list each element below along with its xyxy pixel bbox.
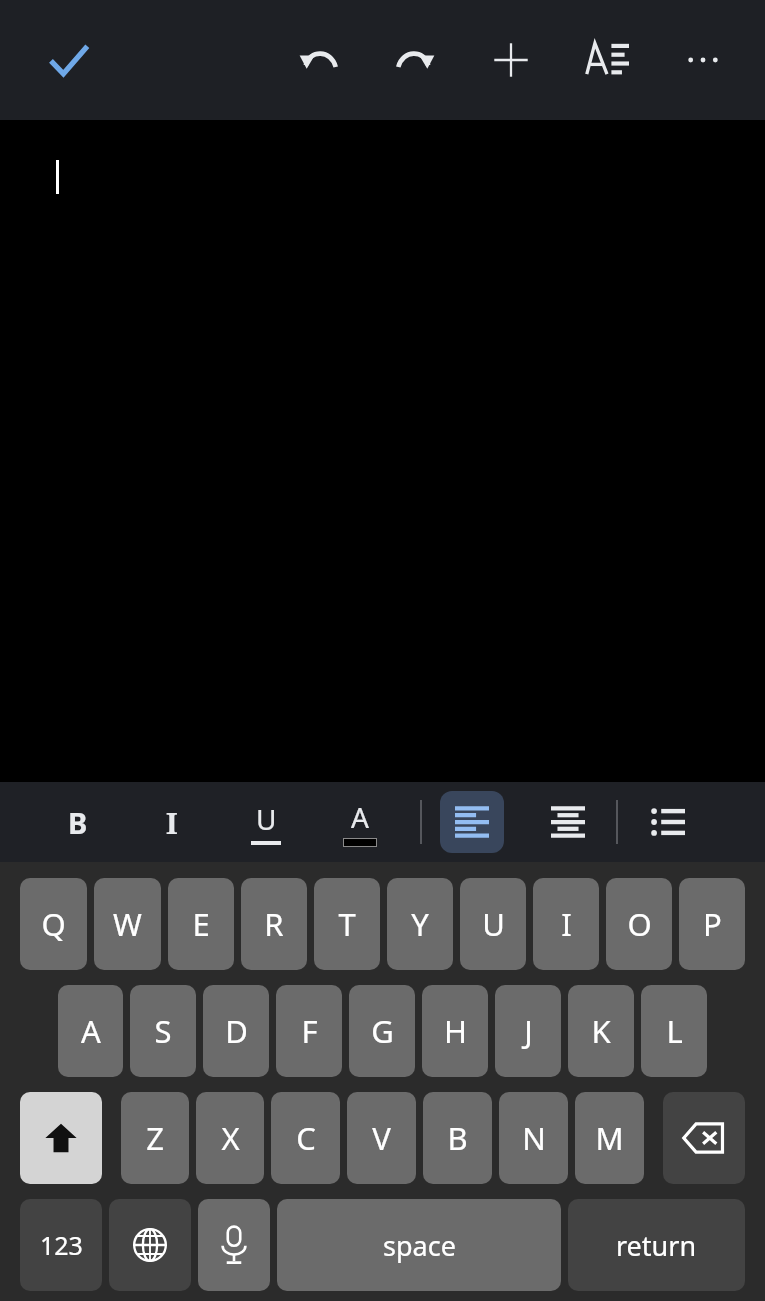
staticText: I [166,803,178,842]
button[interactable]: I [533,878,599,970]
button[interactable]: Underline [222,789,310,855]
button[interactable]: G [349,985,415,1077]
button[interactable]: S [130,985,196,1077]
staticText: Z [146,1117,164,1159]
staticText: V [372,1117,391,1159]
button[interactable]: B [423,1092,492,1184]
button[interactable]: 123 [20,1199,102,1291]
staticText: K [591,1010,611,1052]
button[interactable]: Q [20,878,87,970]
button[interactable]: E [168,878,234,970]
button[interactable]: R [241,878,307,970]
button[interactable]: Shift [20,1092,102,1184]
staticText: Y [411,903,429,945]
button[interactable]: X [196,1092,264,1184]
staticText: E [192,903,210,945]
staticText: J [524,1010,533,1052]
button[interactable]: Insert [463,12,559,108]
button[interactable]: Backspace [663,1092,745,1184]
button[interactable]: Text color [316,789,404,855]
staticText: L [666,1010,683,1052]
button[interactable]: Undo [271,12,367,108]
button[interactable]: Change keyboard language [109,1199,191,1291]
staticText: B [68,803,88,842]
button[interactable]: L [641,985,707,1077]
button[interactable]: Bulleted list [636,791,700,853]
staticText: C [296,1117,316,1159]
staticText: space [383,1227,456,1264]
staticText: 123 [40,1228,83,1262]
button[interactable]: T [314,878,380,970]
button[interactable]: O [606,878,672,970]
staticText: I [561,903,572,945]
staticText: W [113,903,142,945]
staticText: T [338,903,356,945]
staticText: U [256,800,277,838]
staticText: F [301,1010,318,1052]
staticText: X [221,1117,240,1159]
staticText: S [154,1010,172,1052]
button[interactable] [0,120,765,782]
button[interactable]: W [94,878,161,970]
button[interactable]: More options [655,12,751,108]
button[interactable]: Y [387,878,453,970]
button[interactable]: Voice input [198,1199,270,1291]
staticText: P [703,903,722,945]
button[interactable]: Done [26,18,110,102]
button[interactable]: Align left [440,791,504,853]
button[interactable]: K [568,985,634,1077]
staticText: A [81,1010,101,1052]
button[interactable]: Redo [367,12,463,108]
staticText: N [522,1117,546,1159]
staticText: O [627,903,652,945]
staticText: Q [41,903,66,945]
button[interactable]: Italic [128,789,216,855]
staticText: D [225,1010,248,1052]
button[interactable]: Text formatting [559,12,655,108]
button[interactable]: F [276,985,342,1077]
staticText: A [351,798,369,836]
staticText: G [371,1010,394,1052]
staticText: B [447,1117,468,1159]
button[interactable]: return [568,1199,745,1291]
button[interactable]: Z [121,1092,189,1184]
button[interactable]: U [460,878,526,970]
button[interactable]: J [495,985,561,1077]
staticText: M [595,1117,624,1159]
staticText: R [264,903,284,945]
button[interactable]: N [499,1092,568,1184]
button[interactable]: A [58,985,123,1077]
staticText: return [616,1227,697,1264]
button[interactable]: H [422,985,488,1077]
button[interactable]: C [271,1092,340,1184]
button[interactable]: Align center [536,791,600,853]
button[interactable]: space [277,1199,561,1291]
button[interactable]: Bold [34,789,122,855]
button[interactable]: D [203,985,269,1077]
button[interactable]: P [679,878,745,970]
staticText: H [444,1010,467,1052]
staticText: U [482,903,505,945]
button[interactable]: M [575,1092,644,1184]
button[interactable]: V [347,1092,416,1184]
